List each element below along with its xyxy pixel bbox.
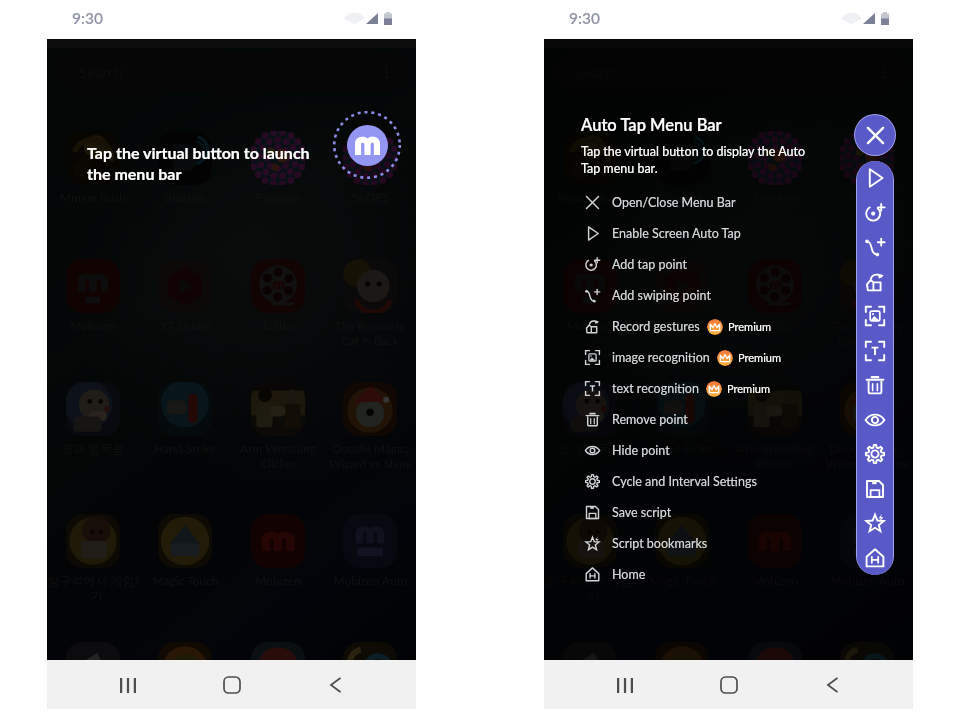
staticText: Mobizen bbox=[255, 573, 301, 587]
button[interactable]: Save script bbox=[858, 472, 892, 506]
button[interactable]: 5s DES bbox=[821, 131, 913, 204]
button[interactable]: Save script bbox=[584, 497, 672, 528]
button[interactable]: text recognition bbox=[584, 373, 770, 404]
staticText: Premium bbox=[738, 351, 781, 364]
staticText: 5s DES bbox=[848, 190, 886, 204]
button[interactable]: Add tap point bbox=[584, 249, 687, 280]
button[interactable]: Record gestures bbox=[858, 265, 892, 299]
button[interactable]: Minion Rush bbox=[47, 131, 139, 204]
button[interactable]: 요괴 벌목꼼 bbox=[47, 382, 139, 456]
button[interactable]: Editto bbox=[729, 259, 821, 332]
staticText: Cycle and Interval Settings bbox=[612, 474, 757, 489]
button[interactable]: App bbox=[324, 642, 416, 660]
staticText: Doodle Magic: Wizard vs Slime bbox=[826, 441, 909, 471]
button[interactable]: Home bbox=[584, 559, 646, 590]
button[interactable]: Mobizen bbox=[544, 259, 636, 332]
button[interactable]: Arm Wrestling Clicker bbox=[232, 382, 324, 471]
button[interactable]: Mobizen floating button bbox=[347, 125, 388, 166]
button[interactable]: Mobizen Auto bbox=[324, 514, 416, 587]
button[interactable]: Cycle and Interval Settings bbox=[858, 437, 892, 471]
button[interactable]: Hide point bbox=[584, 435, 670, 466]
button[interactable]: 방구석에서 게임하 기 bbox=[47, 514, 139, 604]
button[interactable]: Mobizen Auto bbox=[821, 514, 913, 587]
button[interactable]: Arm Wrestling Clicker bbox=[729, 382, 821, 471]
button[interactable]: Remove point bbox=[584, 404, 688, 435]
button[interactable]: Enable Screen Auto Tap bbox=[858, 161, 892, 195]
button[interactable]: The Runaway Cat Is Back bbox=[324, 259, 416, 348]
button[interactable]: The Runaway Cat Is Back bbox=[821, 259, 913, 348]
button[interactable]: Bluelink bbox=[139, 131, 231, 204]
button[interactable]: App bbox=[544, 642, 636, 660]
button[interactable]: Fishdom bbox=[729, 131, 821, 204]
button[interactable]: image recognition bbox=[858, 299, 892, 333]
staticText: Minion Rush bbox=[60, 190, 126, 204]
button[interactable]: Back bbox=[312, 662, 358, 708]
button[interactable]: App bbox=[139, 642, 231, 660]
staticText: Mobizen Auto bbox=[830, 573, 905, 587]
button[interactable]: Enable Screen Auto Tap bbox=[584, 218, 741, 249]
button[interactable]: App bbox=[729, 642, 821, 660]
button[interactable]: Hand Strike bbox=[636, 382, 728, 455]
button[interactable]: Recent apps bbox=[602, 662, 648, 708]
button[interactable]: Mobizen bbox=[232, 514, 324, 587]
button[interactable]: text recognition bbox=[858, 334, 892, 368]
button[interactable]: Home bbox=[209, 662, 255, 708]
button[interactable]: YT Studio bbox=[139, 259, 231, 332]
button[interactable]: Close menu bar bbox=[855, 115, 895, 155]
button[interactable]: Hide point bbox=[858, 403, 892, 437]
button[interactable]: Minion Rush bbox=[544, 131, 636, 204]
staticText: Open/Close Menu Bar bbox=[612, 195, 736, 210]
staticText: Premium bbox=[728, 320, 771, 333]
staticText: Remove point bbox=[612, 412, 688, 427]
button[interactable]: 요괴 벌목꼼 bbox=[544, 382, 636, 456]
staticText: text recognition bbox=[612, 381, 699, 396]
staticText: Hide point bbox=[612, 443, 670, 458]
button[interactable]: Editto bbox=[232, 259, 324, 332]
button[interactable]: Magic Touch bbox=[139, 514, 231, 587]
button[interactable]: Recent apps bbox=[105, 662, 151, 708]
button[interactable]: Remove point bbox=[858, 368, 892, 402]
button[interactable]: 방구석에서 게임하 기 bbox=[544, 514, 636, 604]
button[interactable]: Add swiping point bbox=[858, 230, 892, 264]
button[interactable]: Bluelink bbox=[636, 131, 728, 204]
staticText: Tap the virtual button to display the Au… bbox=[581, 144, 806, 176]
button[interactable]: 5s DES bbox=[324, 131, 416, 204]
button[interactable]: Home bbox=[858, 541, 892, 575]
button[interactable]: Add swiping point bbox=[584, 280, 711, 311]
button[interactable]: Script bookmarks bbox=[858, 506, 892, 540]
button[interactable]: Fishdom bbox=[232, 131, 324, 204]
button[interactable]: Open/Close Menu Bar bbox=[584, 187, 736, 218]
button[interactable]: YT Studio bbox=[636, 259, 728, 332]
button[interactable]: Home bbox=[706, 662, 752, 708]
button[interactable]: Doodle Magic: Wizard vs Slime bbox=[821, 382, 913, 471]
button[interactable]: Script bookmarks bbox=[584, 528, 708, 559]
button[interactable]: App bbox=[636, 642, 728, 660]
staticText: Home bbox=[612, 567, 646, 582]
button[interactable]: Add tap point bbox=[858, 196, 892, 230]
staticText: Magic Touch bbox=[152, 573, 219, 587]
button[interactable]: Record gestures bbox=[584, 311, 771, 342]
button[interactable]: Doodle Magic: Wizard vs Slime bbox=[324, 382, 416, 471]
button[interactable]: Mobizen bbox=[729, 514, 821, 587]
button[interactable]: App bbox=[821, 642, 913, 660]
button[interactable]: Mobizen bbox=[47, 259, 139, 332]
button[interactable]: Cycle and Interval Settings bbox=[584, 466, 757, 497]
button[interactable]: App bbox=[232, 642, 324, 660]
button[interactable]: Magic Touch bbox=[636, 514, 728, 587]
button[interactable]: Hand Strike bbox=[139, 382, 231, 455]
button[interactable]: App bbox=[47, 642, 139, 660]
button[interactable]: Back bbox=[809, 662, 855, 708]
staticText: Auto Tap Menu Bar bbox=[581, 115, 722, 135]
button[interactable]: image recognition bbox=[584, 342, 781, 373]
